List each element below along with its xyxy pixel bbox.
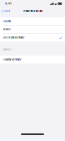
button[interactable]: Povolená volání	[23, 10, 43, 13]
staticText: Všichni	[3, 20, 11, 23]
staticText: Povolená volání	[23, 10, 43, 13]
button[interactable]: Nikdo	[0, 25, 65, 33]
button[interactable]: Oblíbené kontakty	[0, 33, 65, 42]
staticText: Všechny kontakty	[3, 58, 21, 61]
staticText: 9:41	[5, 2, 11, 5]
staticText: SKUPINY	[3, 48, 11, 51]
button[interactable]: Zpět	[0, 7, 11, 15]
staticText: Zpět	[4, 10, 10, 13]
staticText: Nikdo	[3, 28, 11, 31]
staticText: Oblíbené kontakty	[3, 36, 24, 39]
button[interactable]: Všichni	[0, 17, 65, 25]
button[interactable]: Všechny kontakty	[0, 55, 65, 64]
